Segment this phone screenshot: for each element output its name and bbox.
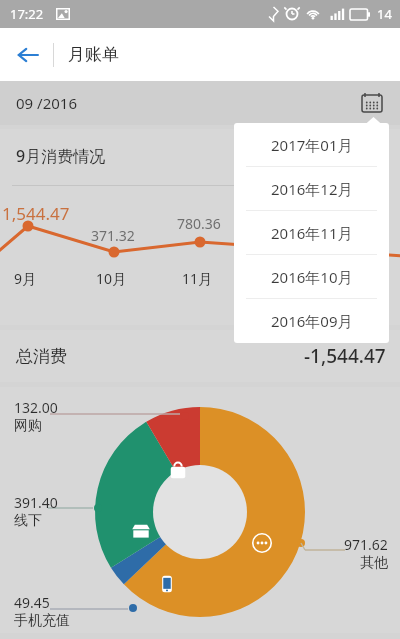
staticText: 14: [377, 5, 392, 23]
staticText: 2016年09月: [271, 311, 353, 331]
staticText: 1,544.47: [2, 202, 70, 225]
staticText: 971.62: [344, 535, 388, 554]
button[interactable]: 总消费: [0, 330, 400, 382]
staticText: 132.00: [14, 398, 58, 417]
button[interactable]: 2016年12月: [234, 167, 389, 211]
button[interactable]: Back: [8, 35, 48, 75]
staticText: 49.45: [14, 593, 50, 612]
staticText: 2016年12月: [271, 179, 353, 199]
staticText: 780.36: [177, 214, 221, 233]
button[interactable]: 2017年01月: [234, 123, 389, 167]
staticText: 总消费: [16, 346, 67, 367]
staticText: 17:22: [10, 5, 44, 23]
staticText: 其他: [360, 554, 388, 572]
staticText: 09 /2016: [16, 93, 77, 113]
button[interactable]: 2016年09月: [234, 299, 389, 343]
staticText: 2017年01月: [271, 135, 353, 155]
staticText: 10月: [96, 269, 127, 288]
button[interactable]: 2016年10月: [234, 255, 389, 299]
staticText: 2016年11月: [271, 223, 353, 243]
staticText: 371.32: [91, 226, 135, 245]
staticText: 9月: [14, 269, 37, 288]
staticText: 391.40: [14, 493, 58, 512]
staticText: 网购: [14, 417, 42, 435]
staticText: 9月消费情况: [16, 145, 106, 167]
staticText: 线下: [14, 512, 42, 530]
staticText: 11月: [182, 269, 213, 288]
button[interactable]: Select month: [352, 83, 392, 123]
staticText: -1,544.47: [304, 343, 386, 369]
staticText: 手机充值: [14, 612, 70, 630]
staticText: 月账单: [68, 44, 119, 65]
button[interactable]: 2016年11月: [234, 211, 389, 255]
staticText: 2016年10月: [271, 267, 353, 287]
